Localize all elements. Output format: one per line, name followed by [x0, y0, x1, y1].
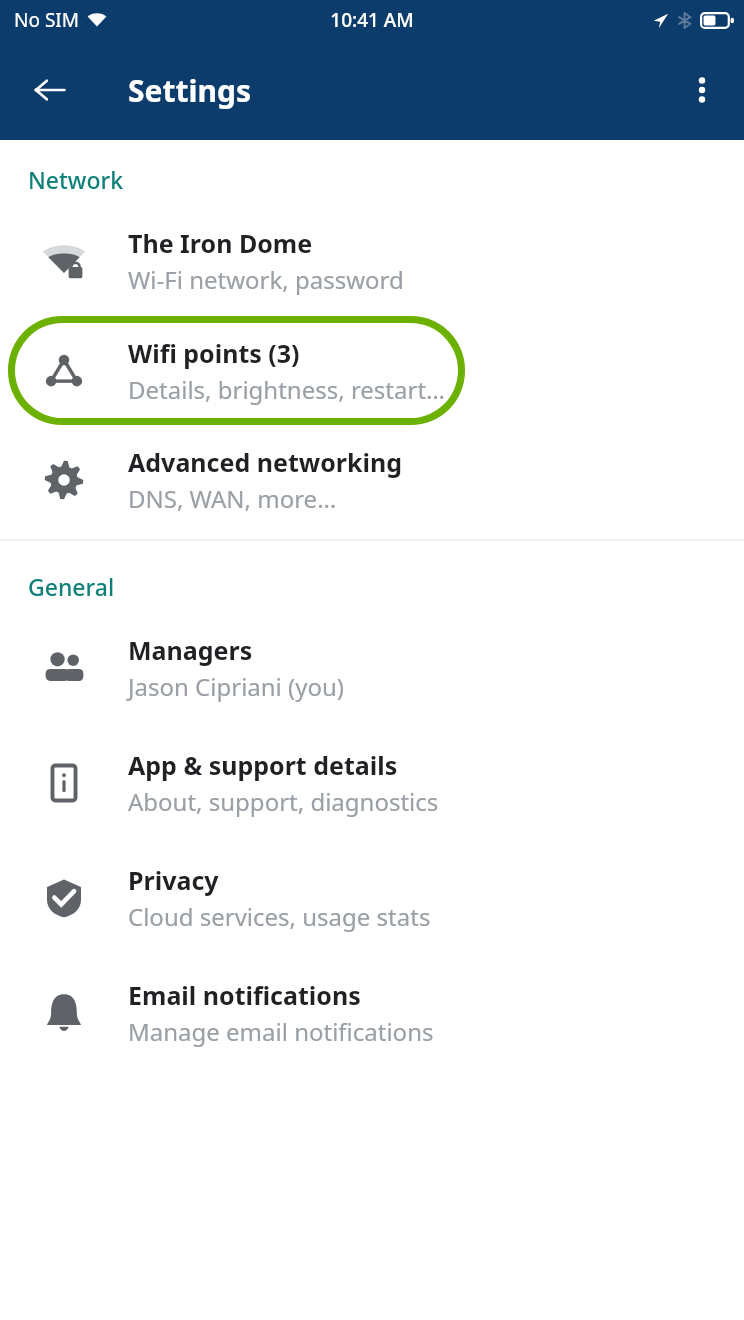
staticText: Wifi points (3) — [128, 336, 300, 370]
button[interactable]: More options — [670, 58, 734, 122]
staticText: Network — [28, 164, 124, 195]
button[interactable]: Wifi points (3) — [0, 313, 744, 428]
staticText: Privacy — [128, 863, 219, 897]
staticText: 10:41 AM — [330, 7, 414, 33]
staticText: Cloud services, usage stats — [128, 900, 431, 933]
button[interactable]: Privacy — [0, 846, 744, 950]
staticText: DNS, WAN, more… — [128, 482, 337, 515]
staticText: General — [28, 571, 115, 602]
staticText: No SIM — [14, 7, 79, 33]
staticText: Email notifications — [128, 978, 361, 1012]
staticText: Wi-Fi network, password — [128, 263, 404, 296]
button[interactable]: Email notifications — [0, 961, 744, 1065]
button[interactable]: The Iron Dome — [0, 209, 744, 313]
staticText: The Iron Dome — [128, 226, 313, 260]
button[interactable]: Managers — [0, 616, 744, 720]
button[interactable]: Back — [18, 58, 82, 122]
staticText: App & support details — [128, 748, 398, 782]
staticText: Managers — [128, 633, 253, 667]
staticText: Jason Cipriani (you) — [128, 670, 345, 703]
button[interactable]: App & support details — [0, 731, 744, 835]
staticText: Manage email notifications — [128, 1015, 434, 1048]
staticText: About, support, diagnostics — [128, 785, 439, 818]
button[interactable]: Advanced networking — [0, 428, 744, 532]
staticText: Settings — [128, 70, 251, 111]
staticText: Details, brightness, restart… — [128, 373, 446, 406]
staticText: Advanced networking — [128, 445, 402, 479]
